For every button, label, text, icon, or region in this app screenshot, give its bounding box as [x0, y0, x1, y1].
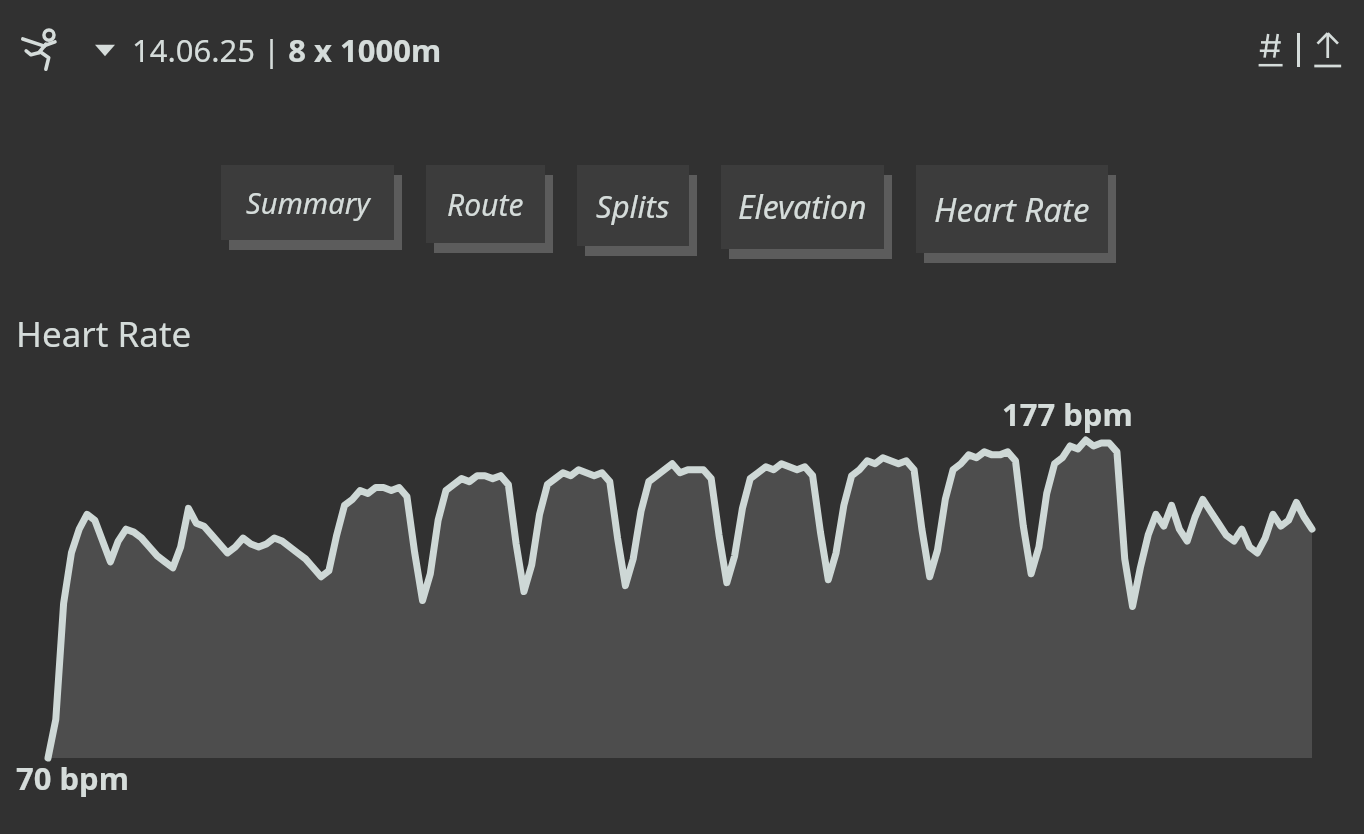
staticText: Summary [246, 183, 370, 222]
button[interactable]: Splits [577, 165, 699, 258]
button[interactable]: Share [1308, 29, 1350, 71]
button[interactable]: Elevation [721, 165, 894, 261]
staticText: Heart Rate [16, 310, 192, 358]
button[interactable]: Heart Rate [916, 165, 1118, 265]
button[interactable]: Summary [221, 165, 404, 252]
button[interactable]: Running activity [14, 22, 70, 78]
staticText: Route [447, 184, 524, 225]
staticText: Elevation [738, 185, 867, 229]
staticText: 14.06.25 | 8 x 1000m [132, 29, 442, 71]
staticText: 70 bpm [16, 757, 129, 799]
button[interactable]: Select activity [92, 37, 118, 63]
button[interactable]: Tags [1253, 30, 1293, 70]
staticText: Splits [596, 185, 670, 227]
staticText: Heart Rate [934, 187, 1090, 232]
staticText: 177 bpm [1002, 393, 1133, 435]
button[interactable]: Route [426, 165, 555, 255]
